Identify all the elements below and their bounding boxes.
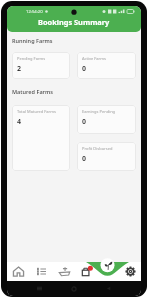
button[interactable]: Invest — [53, 262, 75, 281]
staticText: 2 — [17, 64, 22, 74]
staticText: Profit Disbursed — [82, 146, 113, 151]
staticText: 4 — [17, 117, 22, 127]
staticText: Pending Farms — [17, 56, 46, 61]
staticText: 12:54:20 — [26, 9, 43, 15]
button[interactable]: Earnings Pending — [77, 105, 136, 134]
staticText: Total Matured Farms — [17, 109, 56, 114]
staticText: 0 — [82, 117, 87, 127]
button[interactable]: Settings — [119, 262, 141, 281]
staticText: Matured Farms — [12, 88, 53, 95]
staticText: 0 — [82, 64, 87, 74]
staticText: Active Farms — [82, 56, 106, 61]
button[interactable]: Profit Disbursed — [77, 142, 136, 171]
button[interactable]: Farms — [97, 262, 119, 281]
staticText: 0 — [82, 154, 87, 164]
button[interactable]: Total Matured Farms — [12, 105, 70, 171]
button[interactable]: My orders — [30, 262, 53, 281]
staticText: Running Farms — [12, 37, 53, 44]
button[interactable]: Active Farms — [77, 52, 136, 79]
button[interactable]: Home — [7, 262, 30, 281]
button[interactable]: Cart — [75, 262, 97, 281]
button[interactable]: Pending Farms — [12, 52, 70, 79]
staticText: Bookings Summary — [38, 17, 110, 27]
staticText: Earnings Pending — [82, 109, 116, 114]
